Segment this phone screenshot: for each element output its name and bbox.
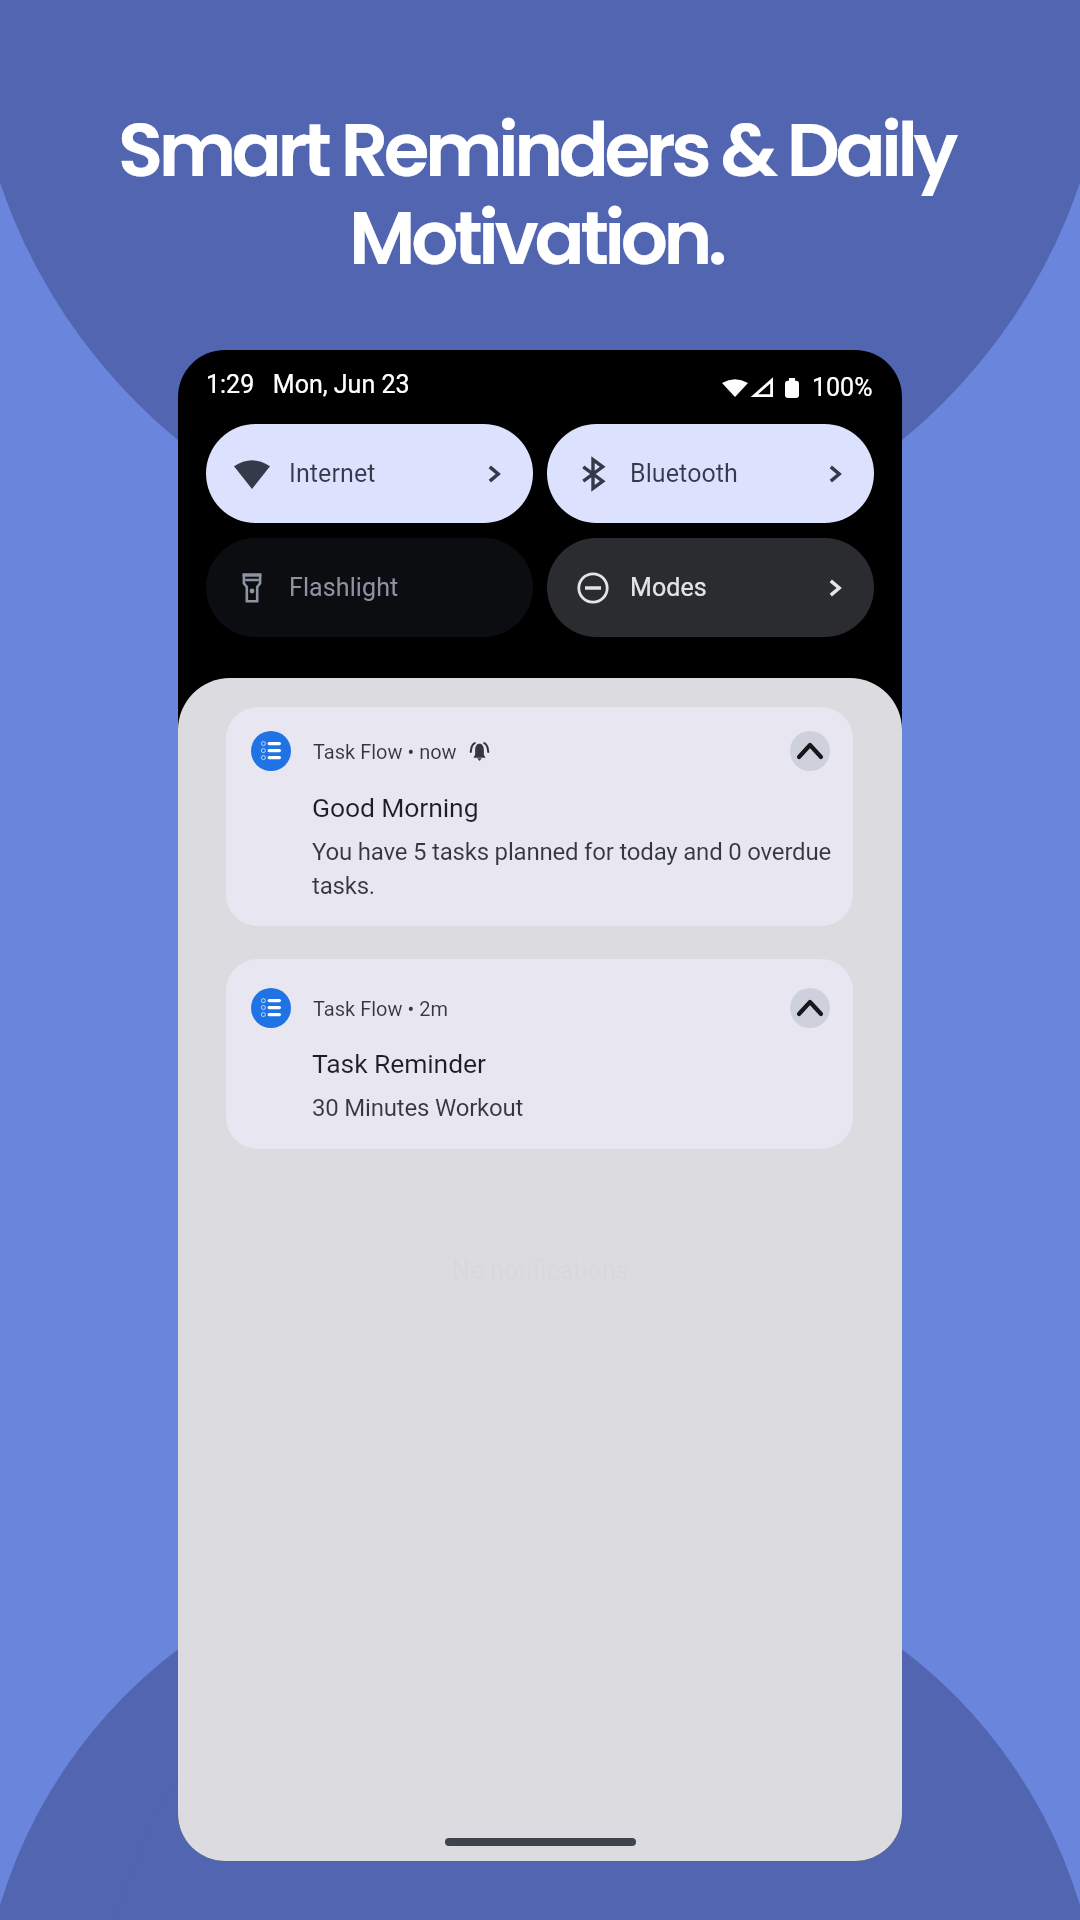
button[interactable]: Task Flow • 2m — [226, 959, 853, 1149]
staticText: Flashlight — [289, 573, 399, 602]
staticText: 30 Minutes Workout — [312, 1094, 853, 1122]
button[interactable]: Bluetooth — [547, 424, 874, 523]
staticText: Internet — [289, 459, 376, 488]
button[interactable]: Internet — [206, 424, 533, 523]
staticText: Task Flow • now — [313, 740, 457, 763]
button[interactable]: Task Flow • now — [226, 707, 853, 926]
staticText: Task Reminder — [312, 1048, 486, 1079]
staticText: 100% — [812, 373, 873, 402]
button[interactable]: Flashlight — [206, 538, 533, 637]
button[interactable]: Modes — [547, 538, 874, 637]
staticText: 1:29 Mon, Jun 23 — [206, 370, 410, 399]
button[interactable]: Collapse notification — [790, 988, 830, 1028]
staticText: Good Morning — [312, 792, 479, 823]
staticText: Task Flow • 2m — [313, 997, 448, 1020]
button[interactable]: Collapse notification — [790, 731, 830, 771]
staticText: Modes — [630, 573, 707, 602]
staticText: Smart Reminders & Daily Motivation. — [0, 98, 1076, 289]
staticText: You have 5 tasks planned for today and 0… — [312, 838, 853, 900]
staticText: Bluetooth — [630, 459, 738, 488]
